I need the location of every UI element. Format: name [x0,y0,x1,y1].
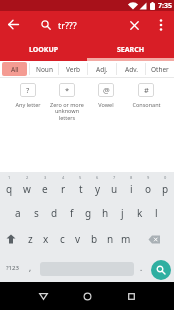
button[interactable]: ?123 [0,253,24,282]
button[interactable]: u [106,178,123,200]
button[interactable]: Verb [59,62,87,76]
button[interactable]: g [80,200,97,225]
staticText: m [121,232,131,246]
staticText: b [91,232,98,246]
button[interactable]: Adj. [88,62,116,76]
staticText: ?123 [6,264,19,272]
button[interactable] [148,253,174,282]
button[interactable] [25,282,61,310]
button[interactable]: SEARCH [87,38,174,61]
button[interactable]: a [9,200,27,225]
staticText: w [23,182,31,196]
staticText: Other [151,65,169,74]
button[interactable]: q [0,178,18,200]
staticText: LOOKUP [29,45,59,55]
button[interactable]: c [54,225,70,253]
staticText: q [6,182,13,196]
button[interactable]: # [126,83,166,108]
button[interactable]: h [97,200,114,225]
staticText: 7:35 [158,1,172,11]
button[interactable]: z [22,225,38,253]
staticText: f [70,206,74,220]
button[interactable]: v [70,225,86,253]
staticText: r [61,182,66,196]
button[interactable] [0,225,22,253]
button[interactable]: . [134,253,148,282]
button[interactable]: t [72,178,89,200]
staticText: @ [103,85,110,95]
staticText: l [155,206,158,220]
button[interactable]: e [36,178,54,200]
staticText: All [11,65,19,74]
button[interactable]: k [131,200,148,225]
staticText: Adv. [125,65,138,74]
staticText: 3 [44,175,47,180]
staticText: t [79,182,83,196]
staticText: Adj. [96,65,108,74]
button[interactable]: l [148,200,165,225]
button[interactable]: j [114,200,131,225]
button[interactable]: y [89,178,106,200]
staticText: 1 [8,175,11,180]
button[interactable]: p [157,178,174,200]
staticText: # [144,85,149,95]
staticText: 8 [130,175,133,180]
button[interactable]: d [45,200,63,225]
staticText: u [111,182,118,196]
staticText: v [75,232,81,246]
button[interactable]: LOOKUP [0,38,87,61]
button[interactable]: i [123,178,140,200]
button[interactable]: r [54,178,72,200]
staticText: * [65,85,70,95]
staticText: d [51,206,58,220]
button[interactable]: b [86,225,102,253]
staticText: x [43,232,49,246]
button[interactable]: f [63,200,80,225]
staticText: 9 [147,175,150,180]
staticText: g [85,206,92,220]
button[interactable] [113,282,149,310]
staticText: n [107,232,114,246]
staticText: 0 [164,175,167,180]
staticText: 2 [26,175,29,180]
staticText: c [60,232,65,246]
button[interactable] [122,13,146,37]
button[interactable] [134,225,174,253]
staticText: Zero or more unknown letters [50,101,84,122]
button[interactable]: o [140,178,157,200]
staticText: k [137,206,143,220]
staticText: o [145,182,152,196]
staticText: SEARCH [117,45,145,55]
button[interactable]: Other [146,62,174,76]
button[interactable]: , [24,253,36,282]
staticText: Consonant [132,101,161,108]
button[interactable]: w [18,178,36,200]
staticText: Any letter [15,101,41,108]
button[interactable]: m [118,225,134,253]
staticText: Noun [36,65,53,74]
button[interactable]: ? [8,83,47,108]
staticText: . [140,262,143,273]
staticText: ? [26,85,30,95]
button[interactable]: All [0,62,29,76]
staticText: p [162,182,169,196]
staticText: Verb [66,65,81,74]
staticText: e [42,182,48,196]
button[interactable]: s [27,200,45,225]
staticText: tr??? [58,19,77,31]
staticText: Vowel [98,101,114,108]
staticText: s [34,206,39,220]
button[interactable] [152,16,170,34]
staticText: , [29,262,32,273]
staticText: j [121,206,124,220]
button[interactable]: n [102,225,118,253]
button[interactable]: Noun [30,62,58,76]
staticText: 5 [79,175,82,180]
button[interactable] [69,282,105,310]
button[interactable]: @ [86,83,126,108]
button[interactable] [0,11,27,38]
button[interactable]: x [38,225,54,253]
button[interactable]: Adv. [117,62,145,76]
button[interactable]: * [47,83,86,122]
